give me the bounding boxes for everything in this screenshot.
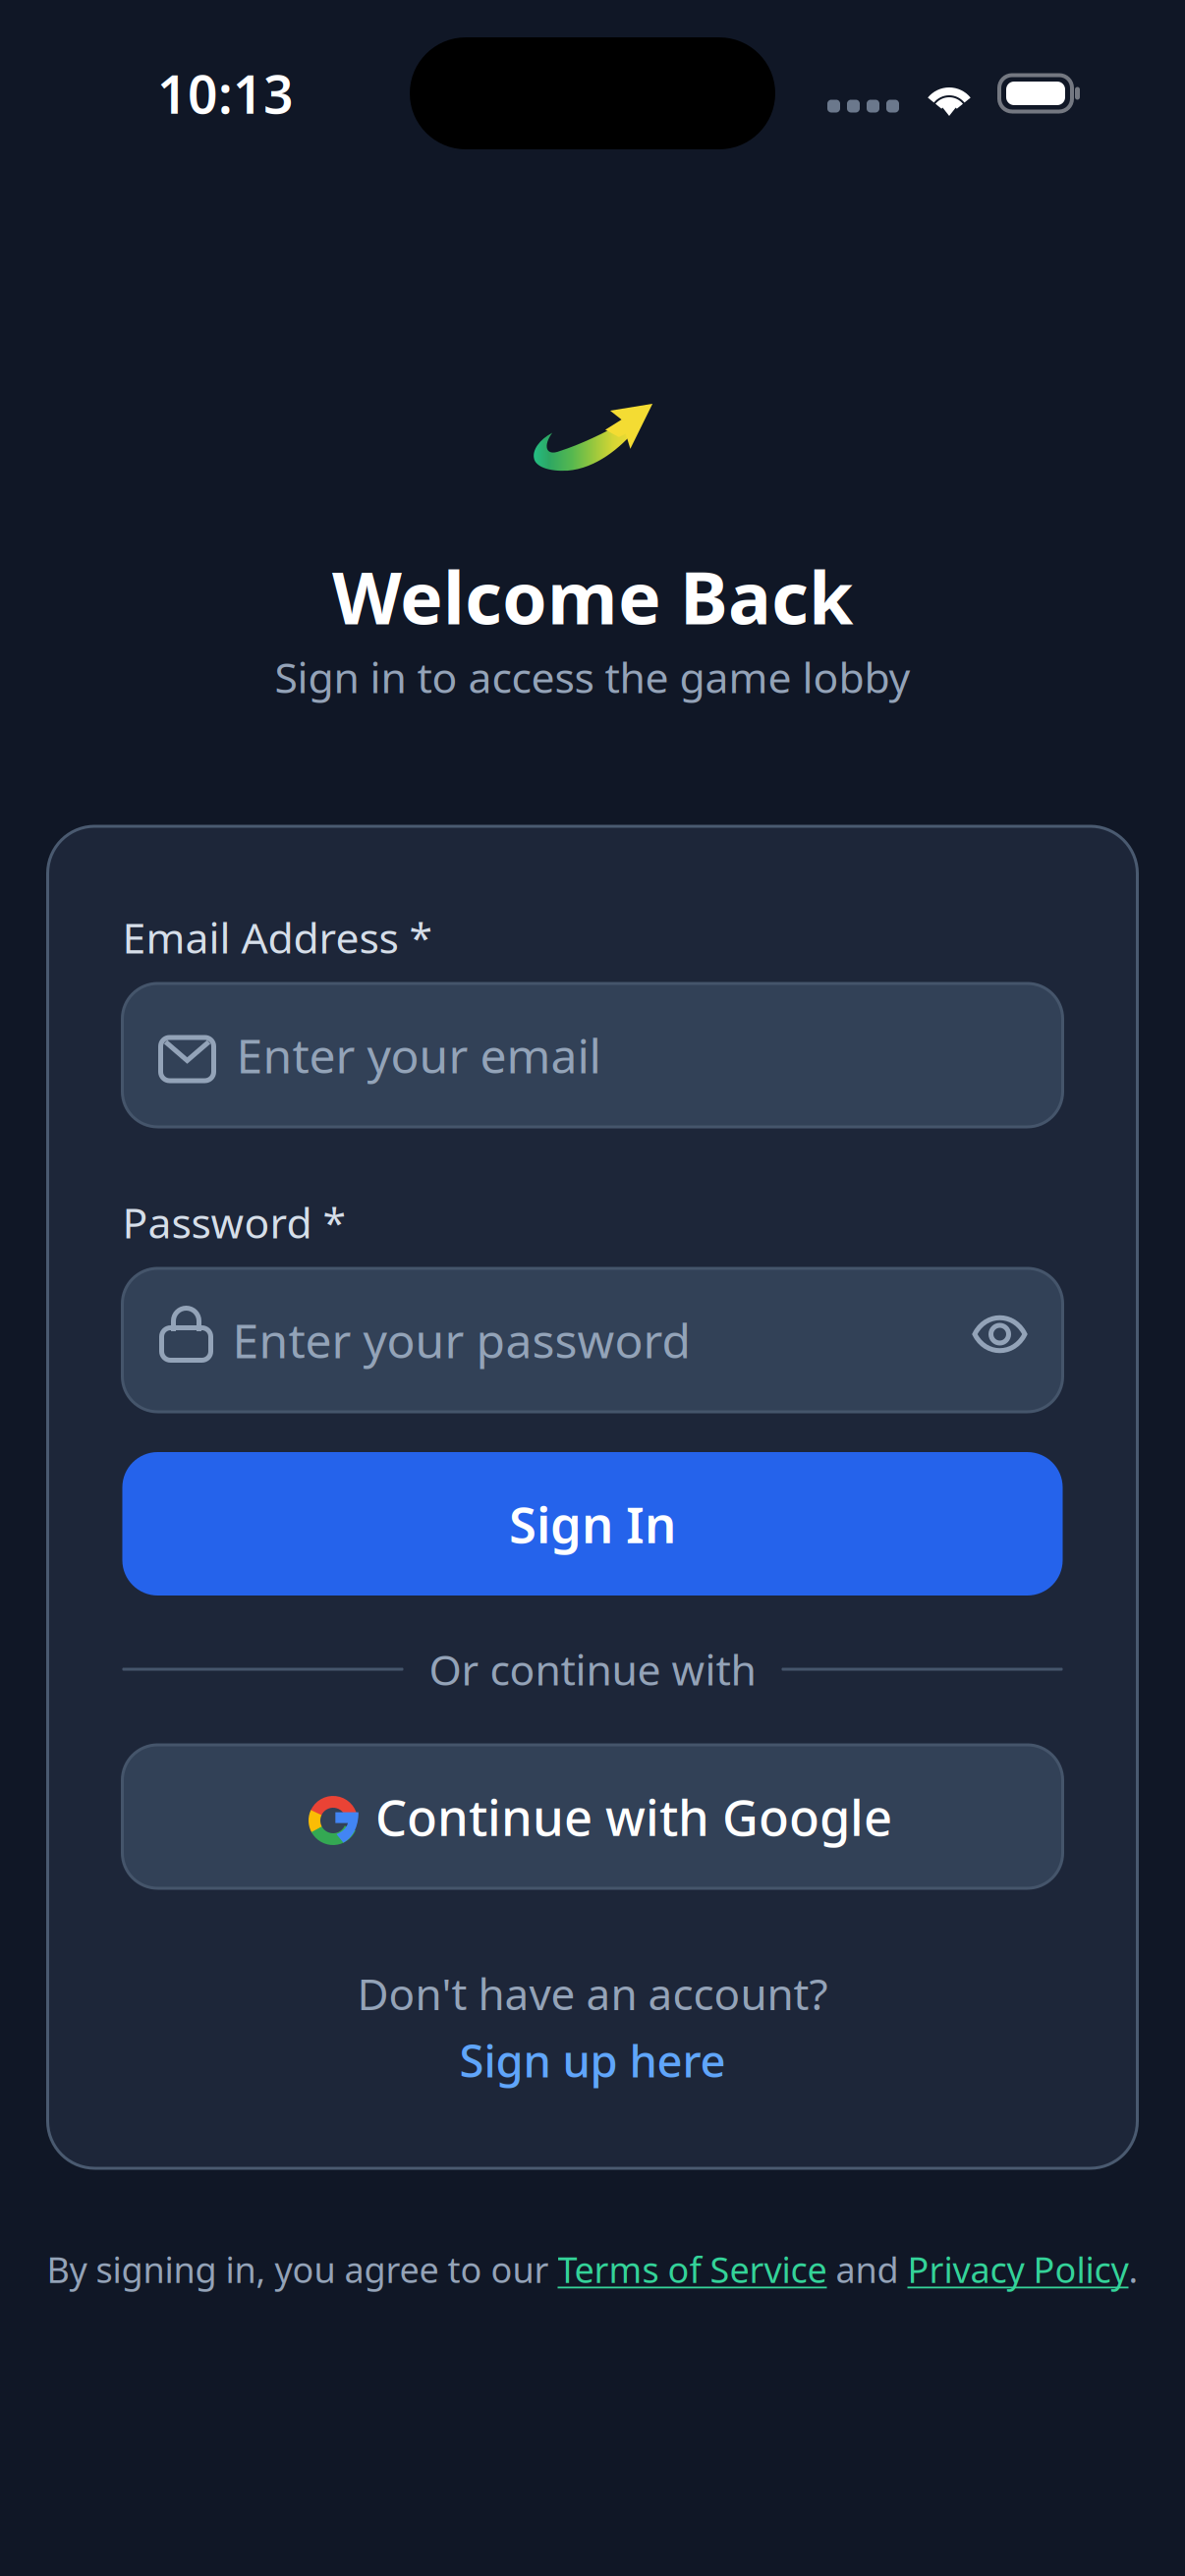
staticText: Welcome Back (332, 549, 853, 644)
staticText: Or continue with (429, 1641, 756, 1697)
button[interactable]: Enter your password (122, 1268, 1063, 1412)
staticText: 10:13 (157, 59, 294, 128)
staticText: Don't have an account? (357, 1965, 828, 2022)
button[interactable]: Sign In (122, 1452, 1063, 1596)
staticText: Sign up here (459, 2031, 726, 2090)
staticText: Password * (122, 1194, 346, 1250)
staticText: and (827, 2246, 907, 2293)
staticText: Continue with Google (375, 1784, 892, 1850)
staticText: Terms of Service (558, 2246, 827, 2293)
button[interactable]: Show password (954, 1268, 1046, 1412)
staticText: Privacy Policy (907, 2246, 1129, 2293)
staticText: Email Address * (122, 909, 433, 965)
button[interactable]: Privacy Policy (907, 2246, 1129, 2293)
staticText: . (1129, 2246, 1138, 2293)
staticText: Sign In (509, 1491, 676, 1557)
staticText: By signing in, you agree to our (47, 2246, 558, 2293)
button[interactable]: Sign up here (459, 2037, 726, 2084)
button[interactable]: Continue with Google (122, 1745, 1063, 1888)
button[interactable]: Terms of Service (558, 2246, 827, 2293)
staticText: Enter your email (236, 1024, 601, 1086)
staticText: Sign in to access the game lobby (275, 649, 910, 705)
button[interactable]: Enter your email (122, 983, 1063, 1127)
staticText: Enter your password (232, 1309, 691, 1371)
